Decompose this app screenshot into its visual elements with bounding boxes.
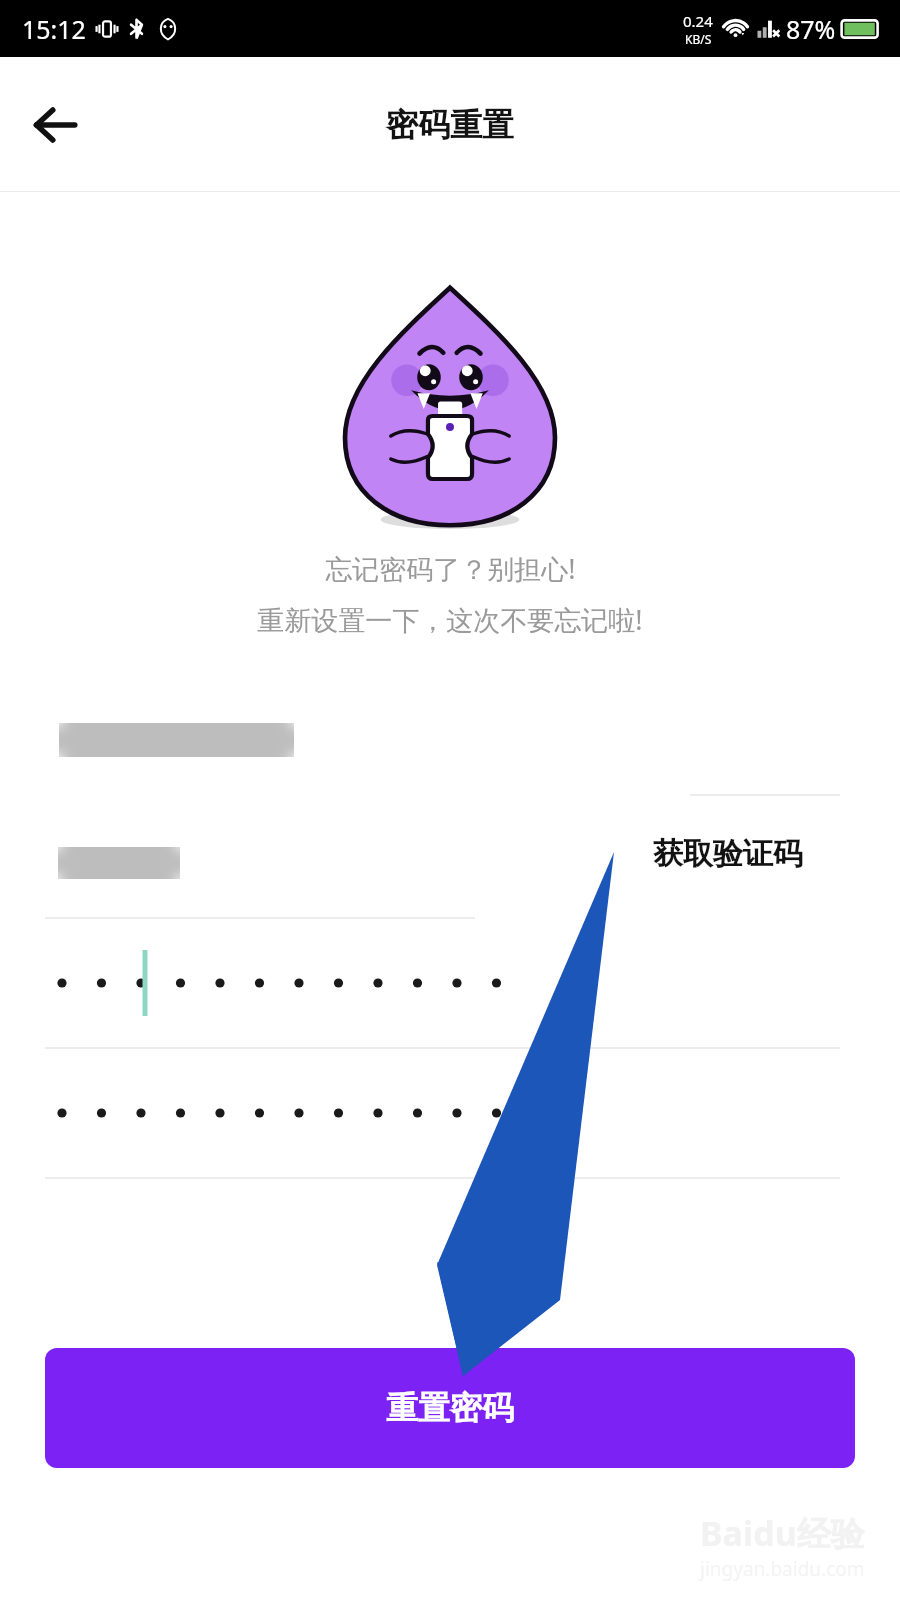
button[interactable]: 获取验证码: [645, 827, 811, 881]
staticText: 重置密码: [386, 1388, 514, 1428]
staticText: 87%: [786, 12, 836, 46]
staticText: 密码重置: [386, 105, 514, 145]
button[interactable]: [45, 812, 900, 908]
staticText: 0.24: [683, 11, 713, 31]
button[interactable]: [45, 692, 900, 788]
staticText: jingyan.baidu.com: [700, 1556, 865, 1582]
button[interactable]: 重置密码: [45, 1348, 855, 1468]
staticText: 获取验证码: [653, 835, 803, 873]
button[interactable]: [45, 919, 900, 1047]
staticText: 重新设置一下，这次不要忘记啦!: [257, 601, 643, 638]
button[interactable]: [45, 1049, 900, 1177]
staticText: KB/S: [685, 31, 712, 47]
staticText: Baidu经验: [700, 1510, 865, 1556]
staticText: 忘记密码了？别担心!: [325, 550, 576, 587]
staticText: 15:12: [22, 12, 86, 46]
button[interactable]: 返回: [20, 90, 90, 160]
